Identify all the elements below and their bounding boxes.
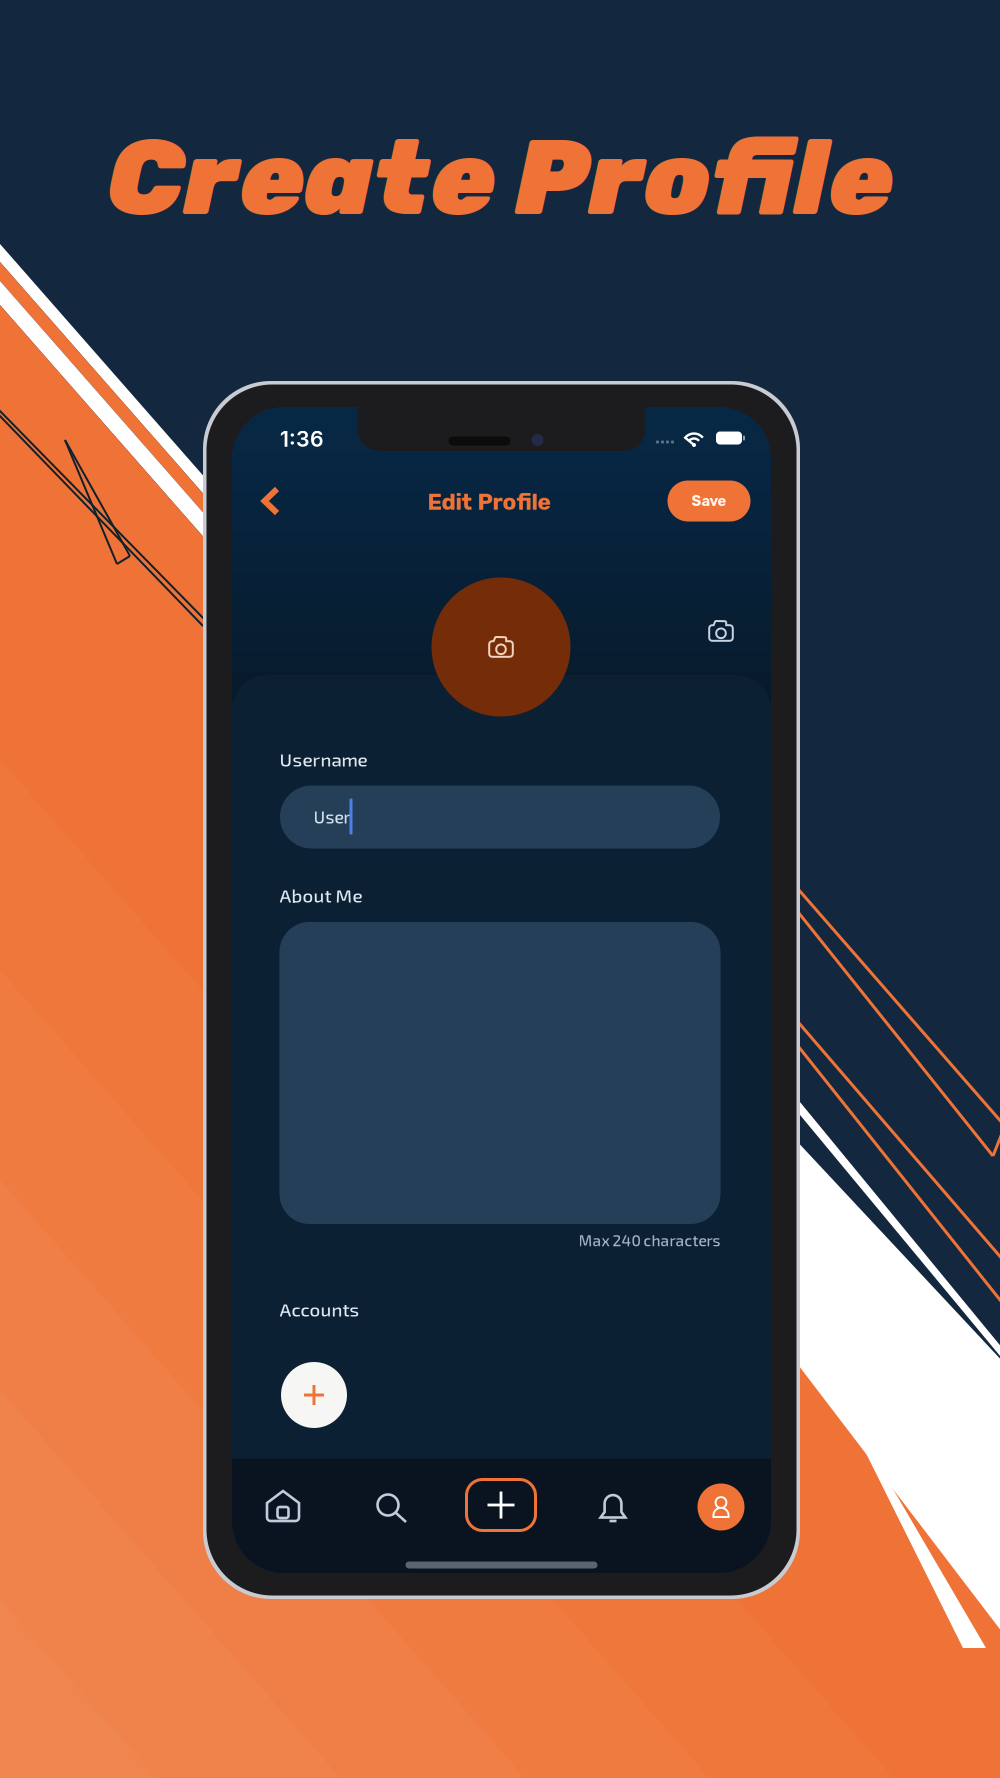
button[interactable]: Home: [254, 1478, 311, 1533]
button[interactable]: Choose photo: [695, 607, 747, 655]
staticText: User: [313, 806, 350, 827]
staticText: 1:36: [280, 426, 324, 452]
staticText: Max 240 characters: [578, 1231, 720, 1249]
staticText: Save: [691, 492, 726, 510]
staticText: Username: [279, 748, 367, 770]
button[interactable]: Save: [667, 480, 750, 521]
button[interactable]: Back: [250, 475, 292, 527]
button[interactable]: Profile: [697, 1483, 744, 1530]
staticText: Create Profile: [107, 116, 893, 240]
staticText: About Me: [279, 884, 362, 906]
staticText: Accounts: [279, 1298, 359, 1320]
button[interactable]: Change profile photo: [431, 577, 570, 716]
button[interactable]: Add account: [281, 1362, 347, 1428]
button[interactable]: Create: [466, 1479, 535, 1530]
staticText: Edit Profile: [427, 489, 550, 515]
button[interactable]: Notifications: [588, 1479, 638, 1534]
button[interactable]: Search: [365, 1482, 419, 1534]
